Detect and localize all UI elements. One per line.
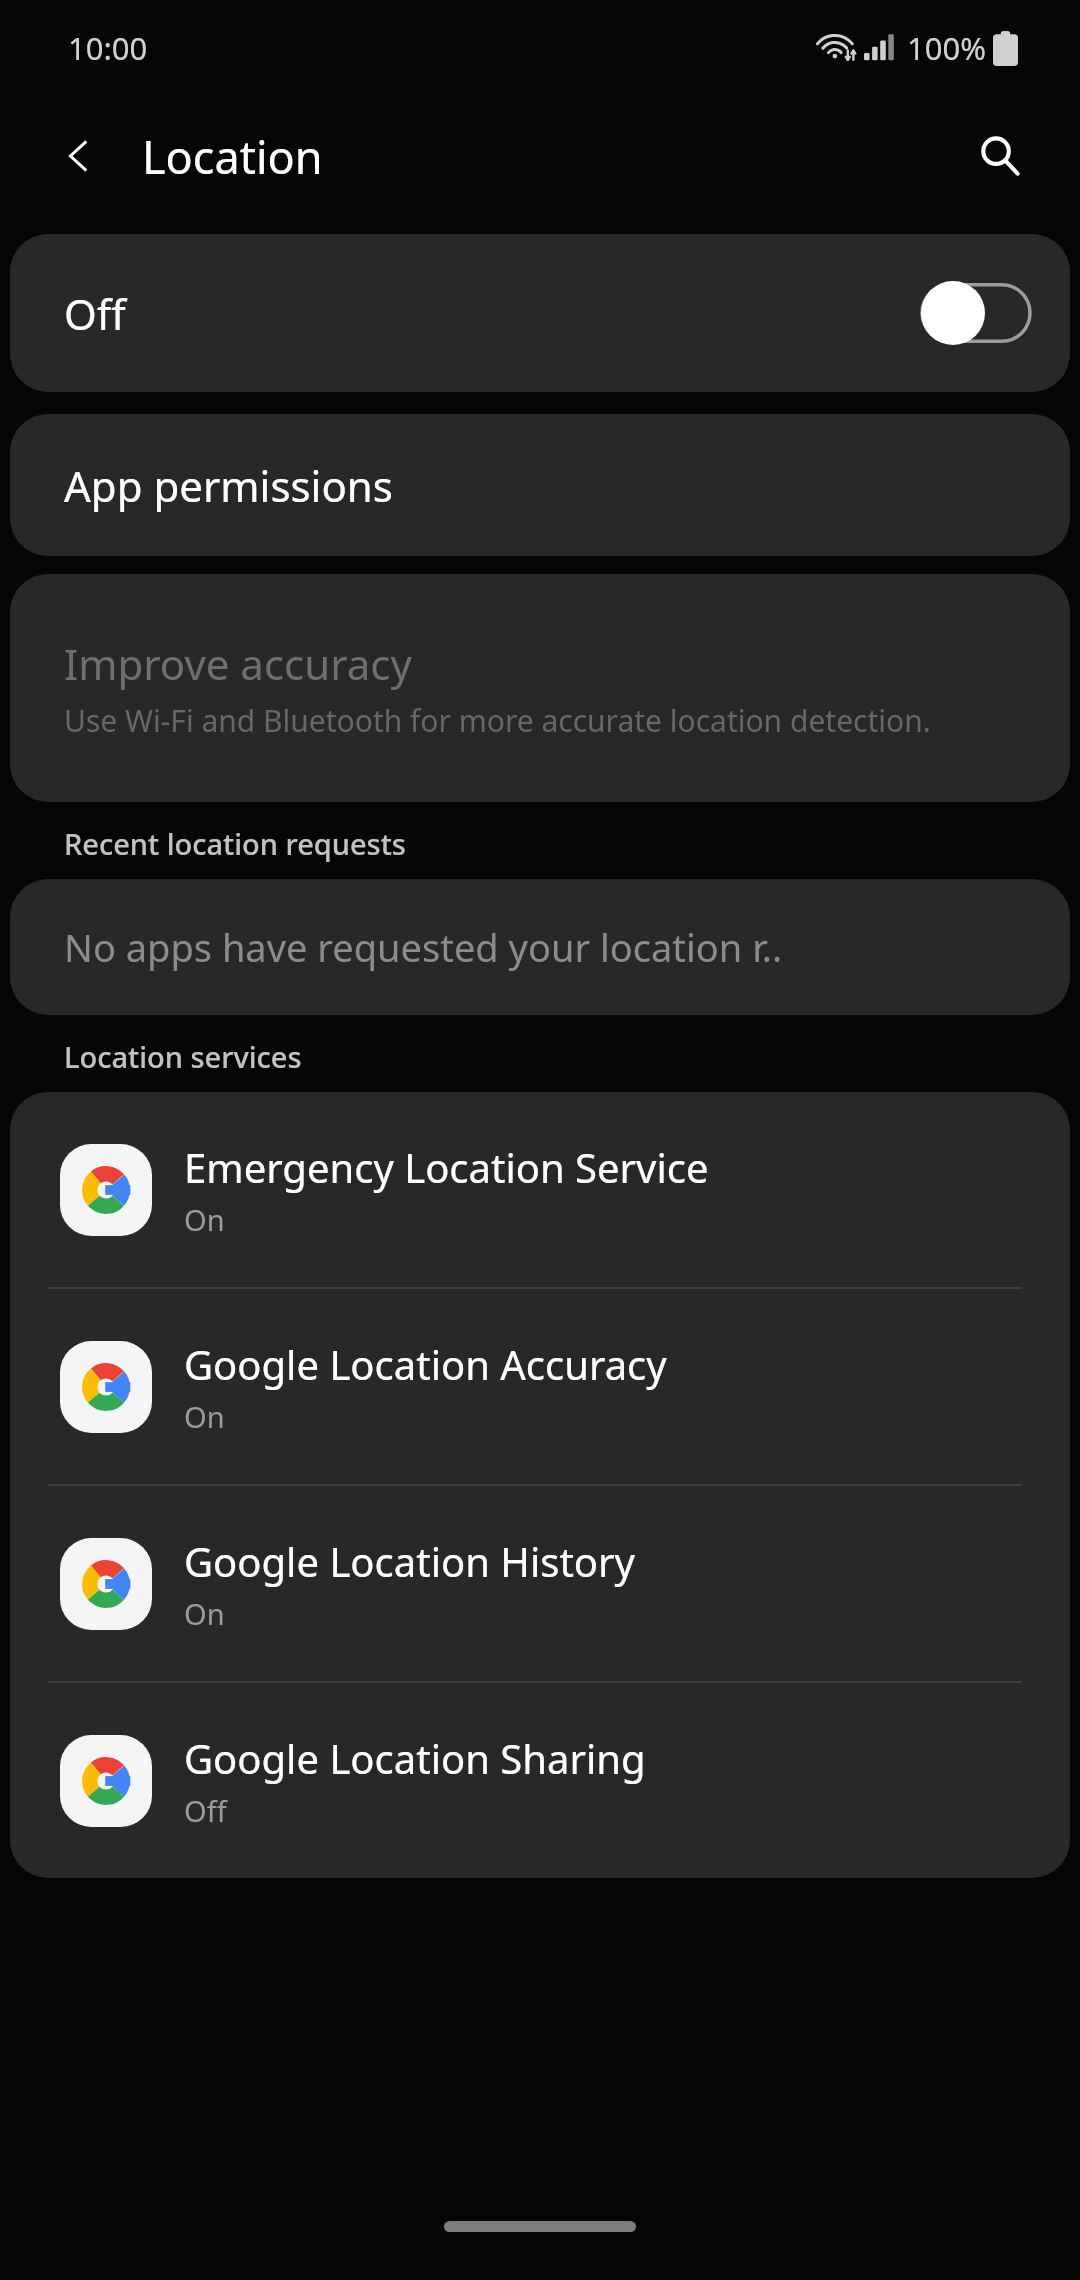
staticText: Location services xyxy=(64,1037,302,1076)
staticText: No apps have requested your location r.. xyxy=(64,921,783,973)
staticText: 100% xyxy=(907,27,986,69)
staticText: Use Wi-Fi and Bluetooth for more accurat… xyxy=(64,700,931,741)
staticText: 10:00 xyxy=(68,27,148,69)
button[interactable]: App permissions xyxy=(10,414,1070,556)
staticText: Improve accuracy xyxy=(64,635,412,692)
button[interactable]: Off xyxy=(10,234,1070,392)
staticText: Google Location Accuracy xyxy=(184,1337,667,1391)
staticText: On xyxy=(184,1594,225,1633)
staticText: Location xyxy=(142,126,323,187)
staticText: App permissions xyxy=(64,457,393,514)
button[interactable]: Google Location Sharing xyxy=(10,1683,1070,1878)
button[interactable]: No apps have requested your location r.. xyxy=(10,879,1070,1015)
staticText: Recent location requests xyxy=(64,824,406,863)
button[interactable]: Back xyxy=(38,116,118,196)
button[interactable]: Emergency Location Service xyxy=(10,1092,1070,1287)
staticText: On xyxy=(184,1397,225,1436)
button[interactable]: Google Location History xyxy=(10,1486,1070,1681)
staticText: Google Location Sharing xyxy=(184,1731,646,1785)
staticText: On xyxy=(184,1200,225,1239)
button[interactable]: Google Location Accuracy xyxy=(10,1289,1070,1484)
staticText: Emergency Location Service xyxy=(184,1140,709,1194)
staticText: Off xyxy=(184,1791,227,1830)
button[interactable]: Search xyxy=(958,114,1042,198)
staticText: Off xyxy=(64,285,126,342)
button[interactable]: Improve accuracy xyxy=(10,574,1070,802)
staticText: Google Location History xyxy=(184,1534,635,1588)
